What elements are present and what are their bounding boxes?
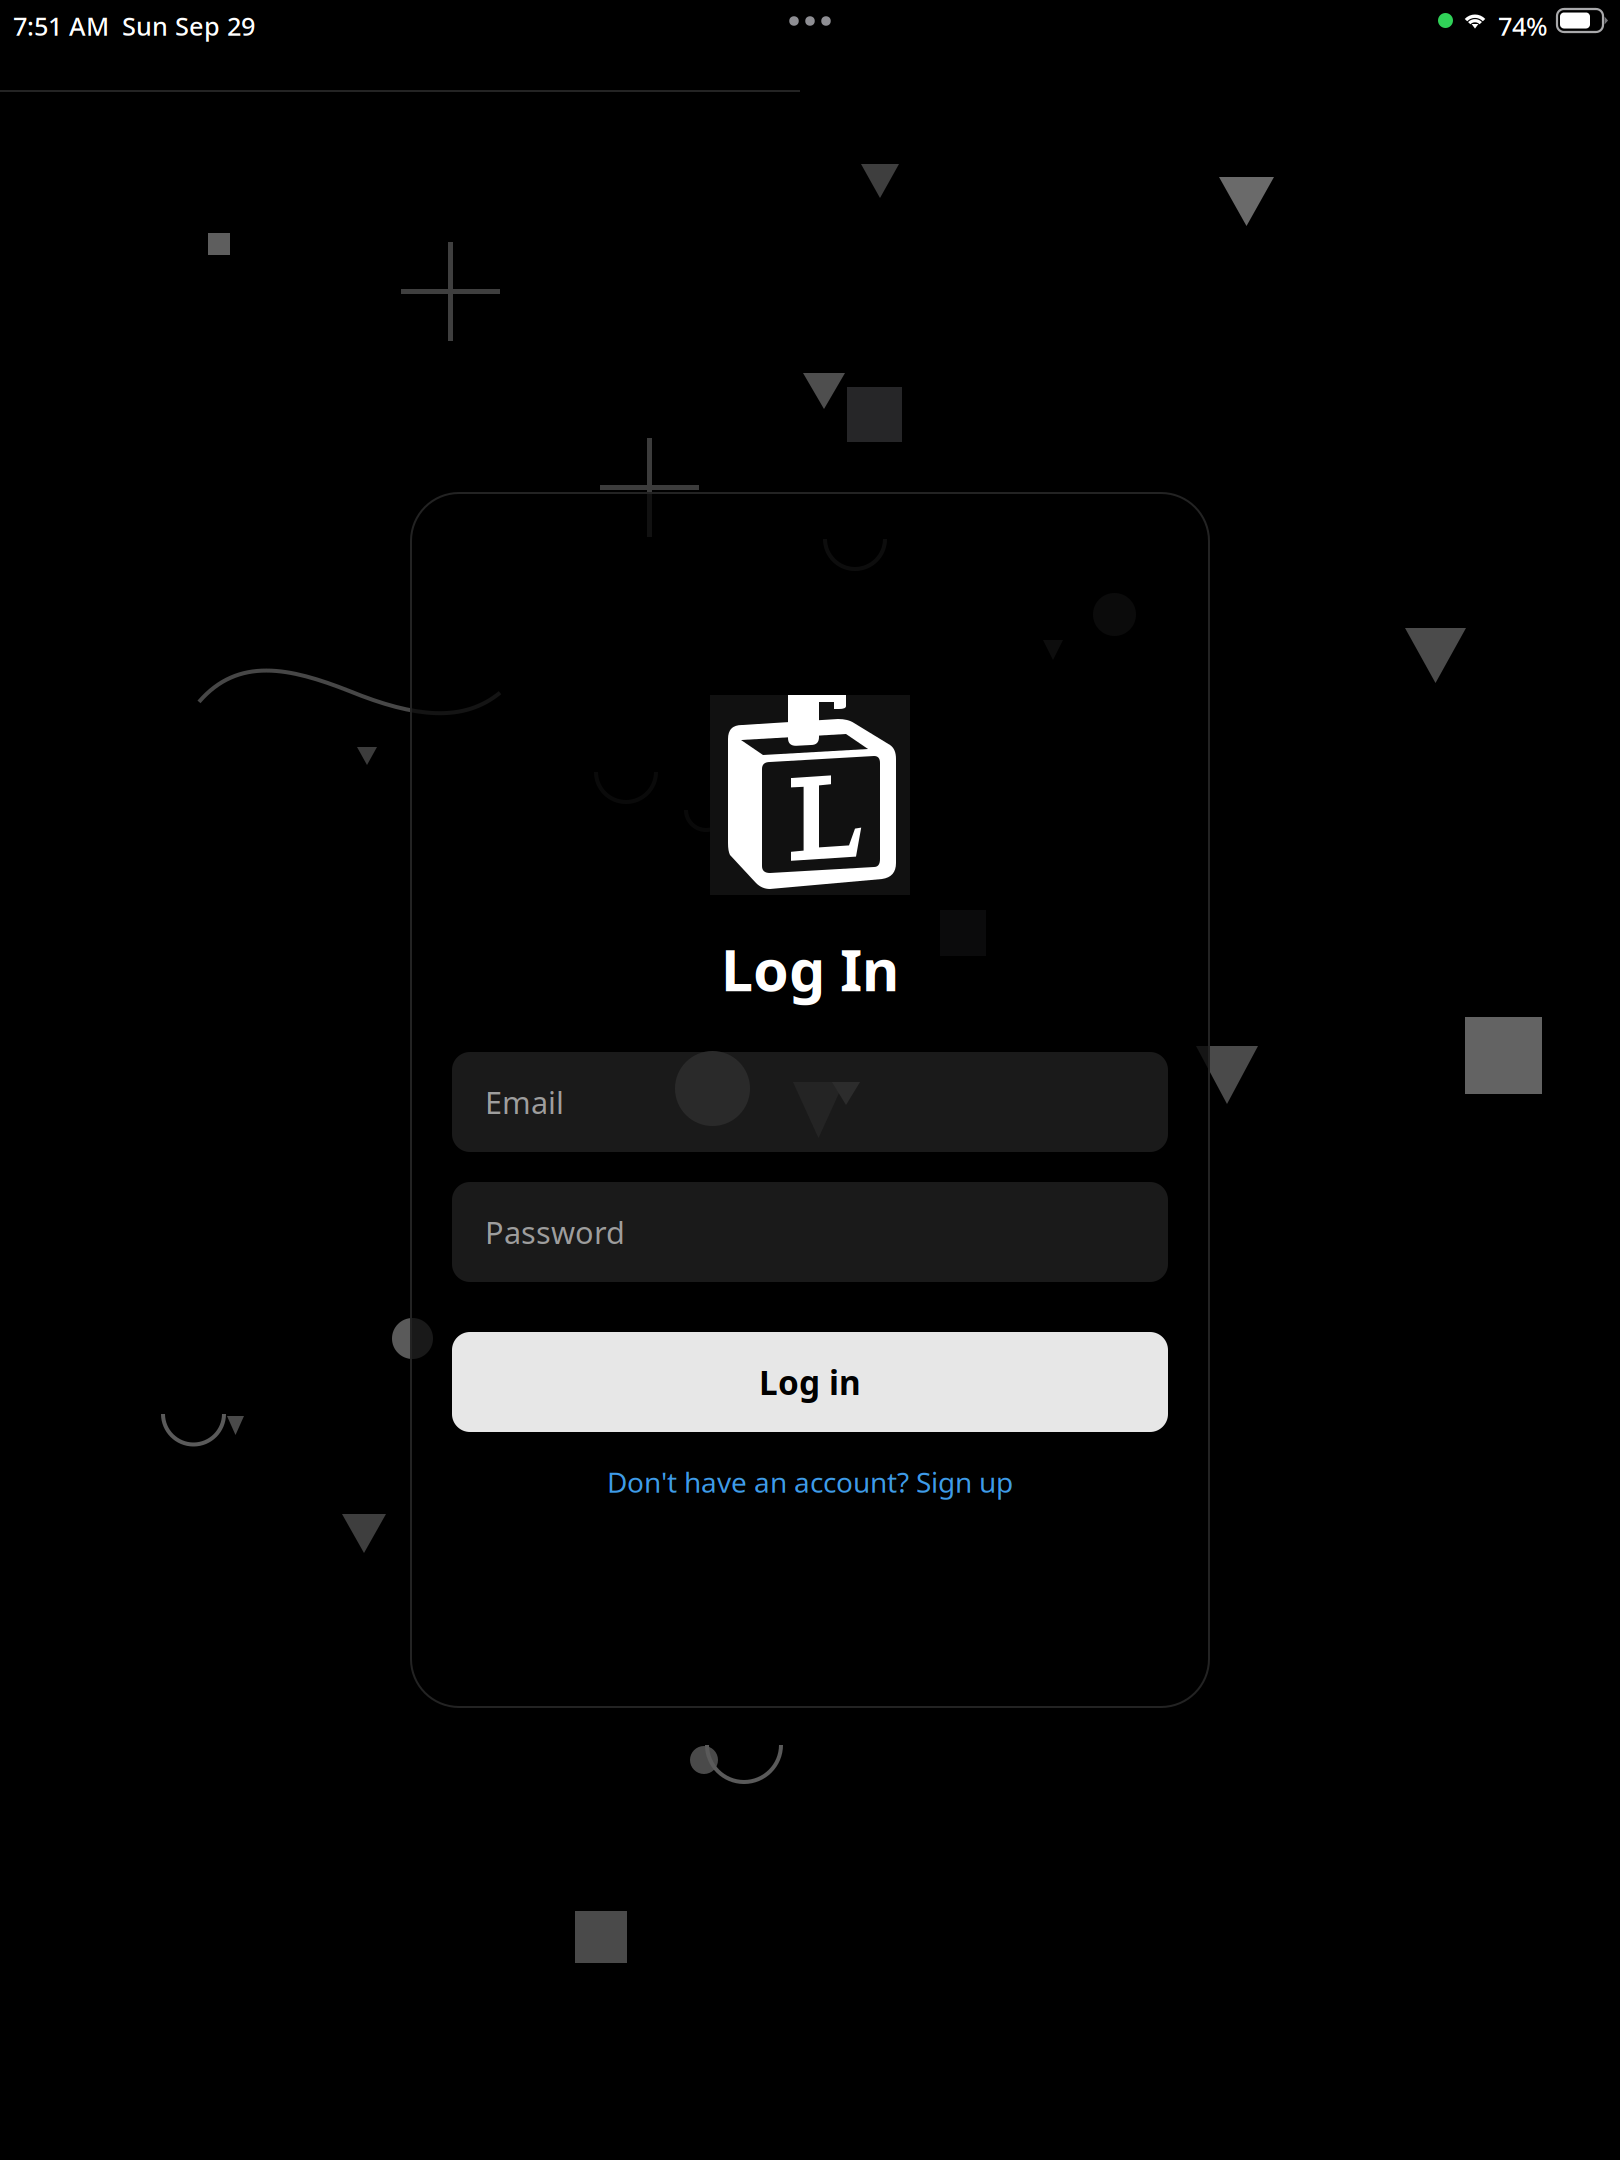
- button[interactable]: Password: [452, 1182, 1168, 1282]
- button[interactable]: Multitasking options: [786, 16, 834, 26]
- staticText: Email: [485, 1082, 564, 1122]
- button[interactable]: Log in: [452, 1332, 1168, 1432]
- staticText: Sun Sep 29: [122, 9, 255, 43]
- button[interactable]: Don't have an account? Sign up: [411, 1460, 1209, 1504]
- staticText: Don't have an account? Sign up: [607, 1463, 1013, 1501]
- staticText: Password: [485, 1212, 625, 1252]
- staticText: Log In: [721, 931, 899, 1007]
- button[interactable]: Email: [452, 1052, 1168, 1152]
- staticText: 74%: [1498, 9, 1548, 43]
- staticText: 7:51 AM: [13, 9, 109, 43]
- staticText: Log in: [759, 1360, 861, 1404]
